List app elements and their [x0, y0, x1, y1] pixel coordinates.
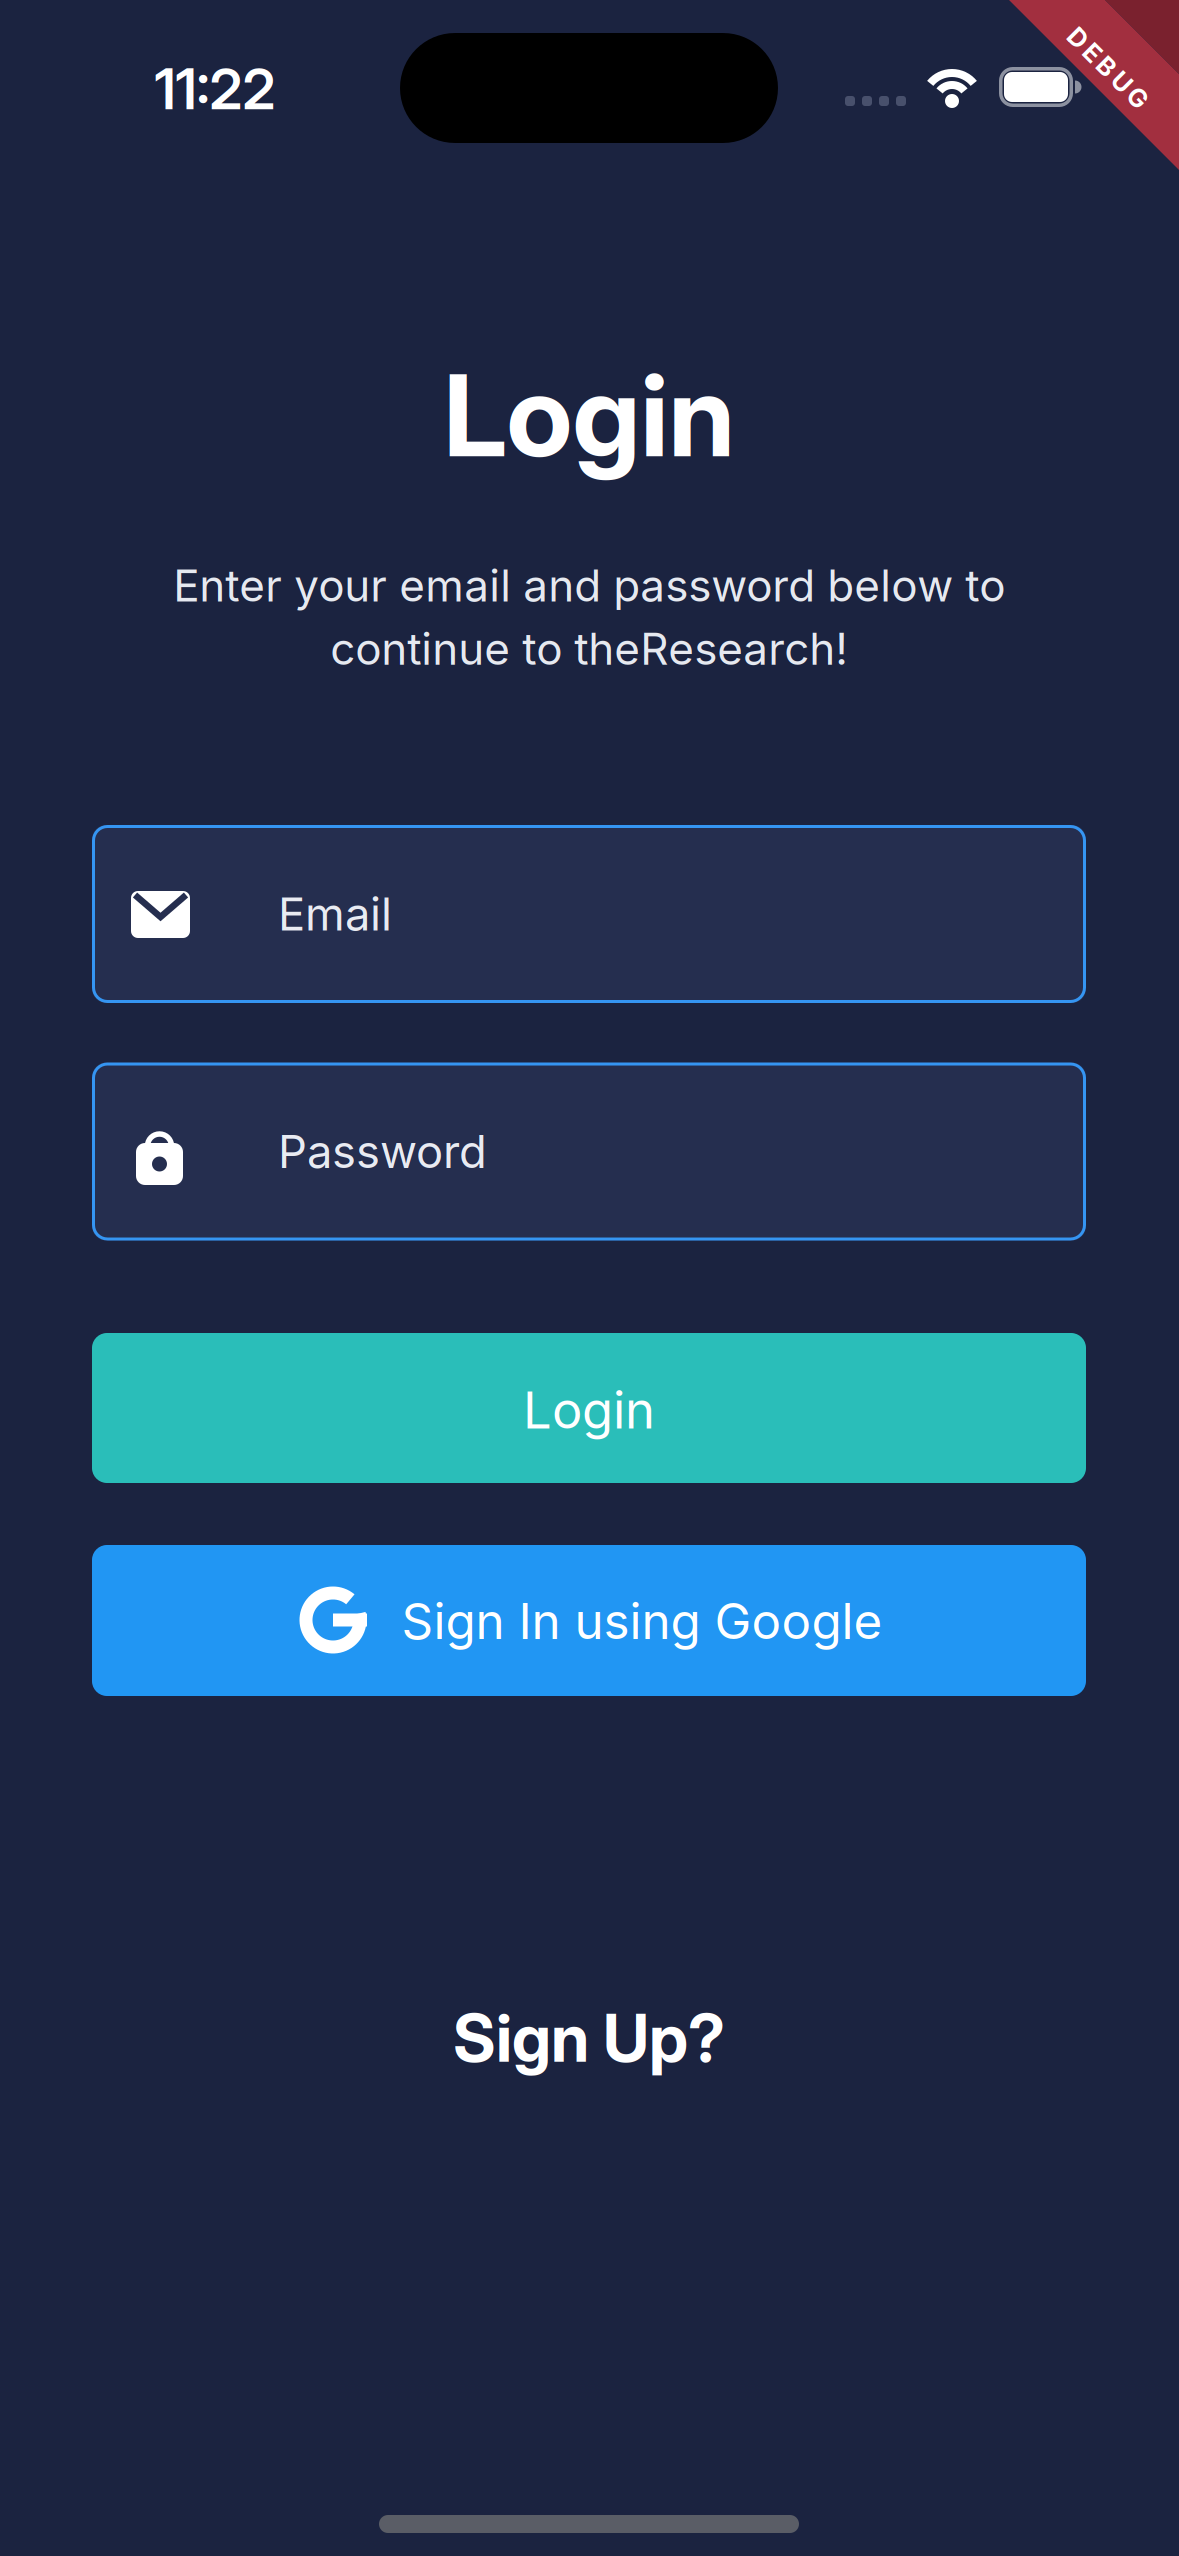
staticText: Login [523, 1379, 655, 1441]
staticText: Sign Up? [453, 1998, 725, 2077]
staticText: Email [278, 887, 392, 941]
staticText: DEBUG [1056, 53, 1159, 83]
staticText: Sign In using Google [401, 1591, 882, 1651]
staticText: 11:22 [154, 55, 275, 123]
staticText: Enter your email and password below to c… [173, 559, 1005, 675]
staticText: Password [278, 1124, 487, 1179]
staticText: Login [443, 346, 734, 483]
